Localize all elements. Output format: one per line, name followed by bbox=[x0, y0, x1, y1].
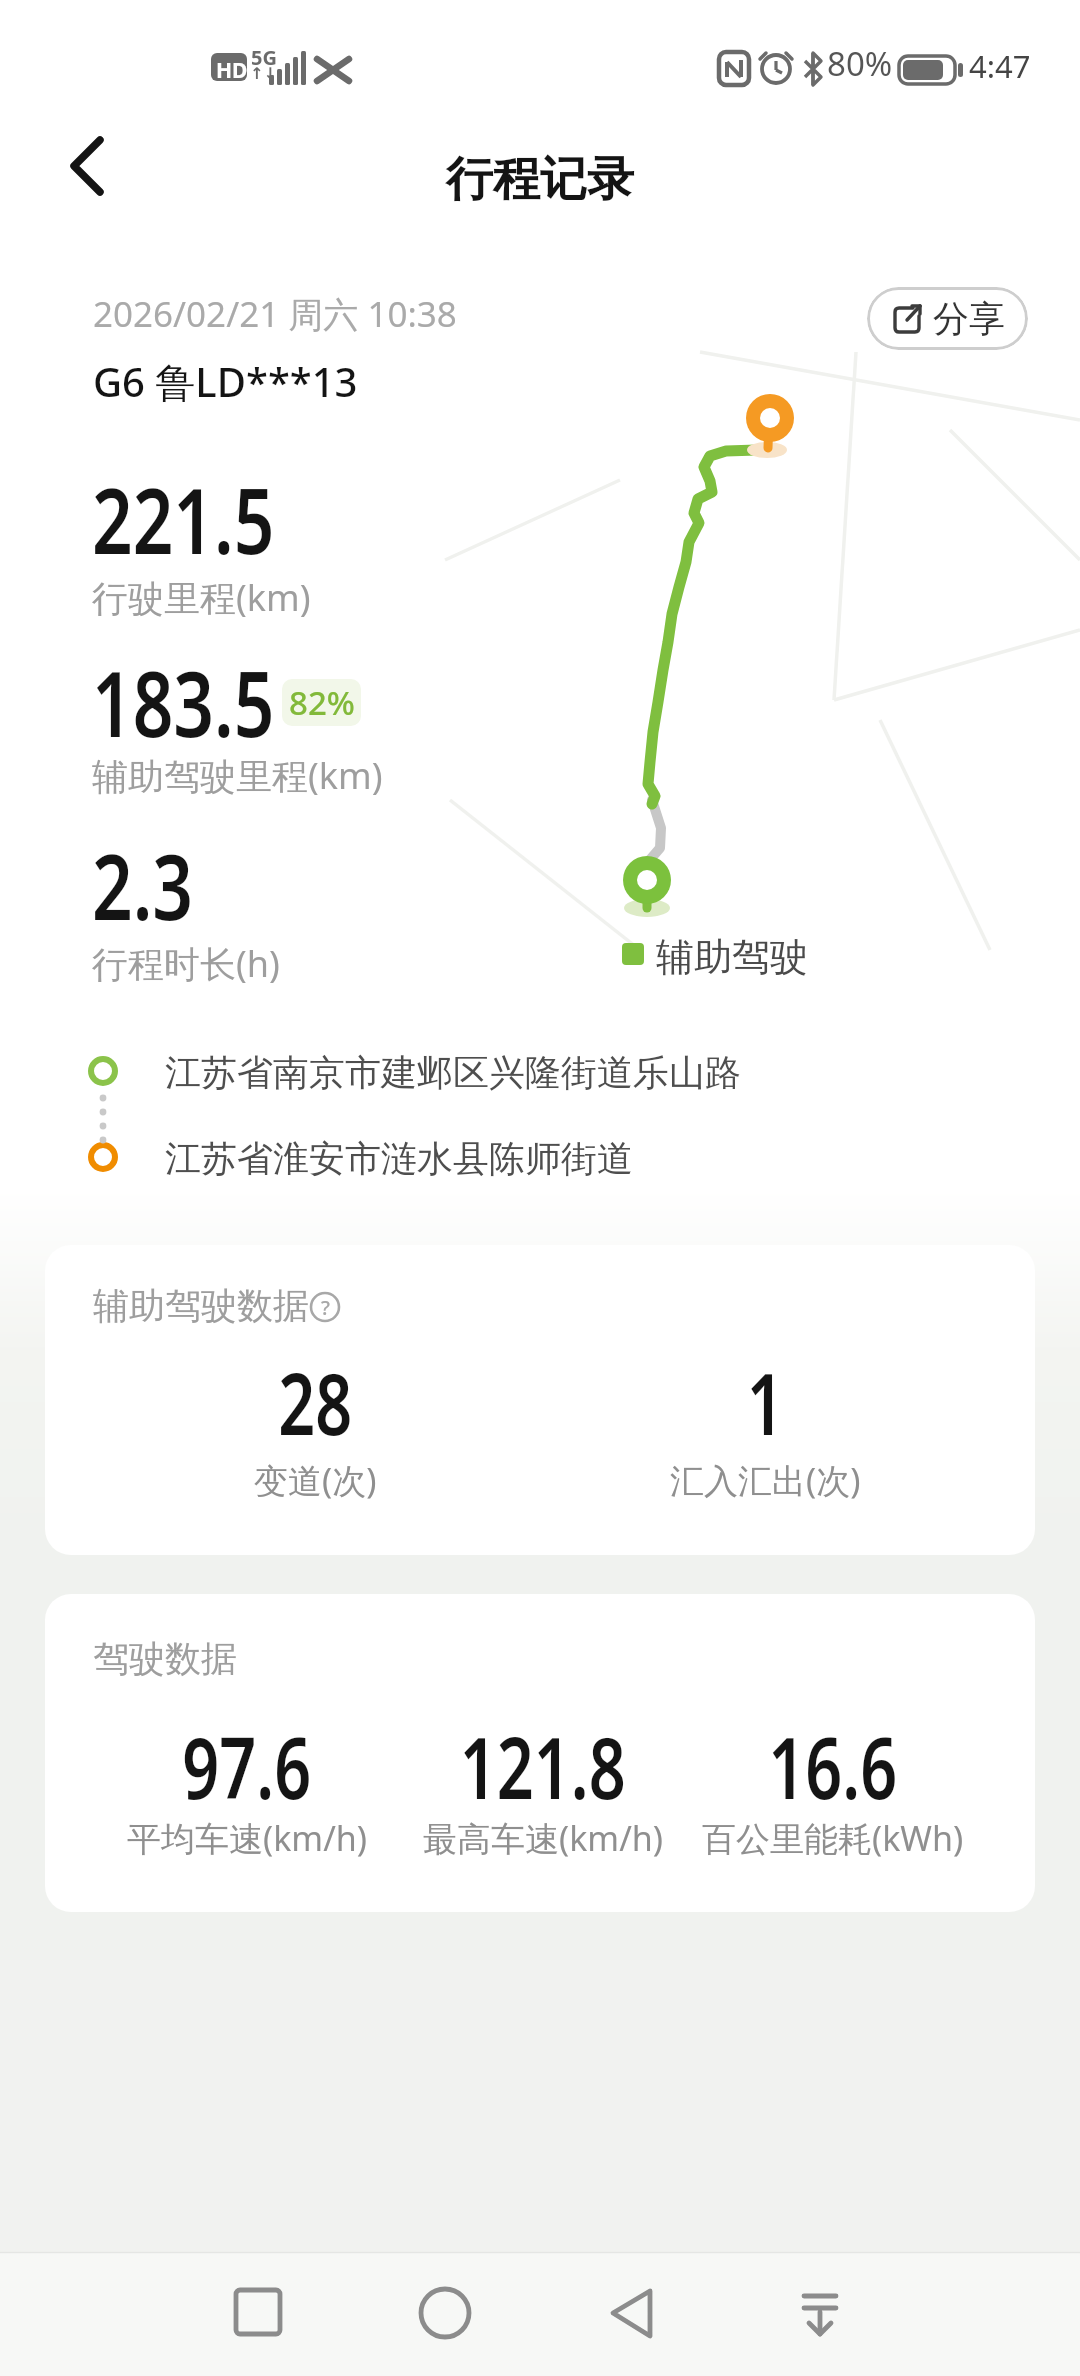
button[interactable]: 辅助驾驶数据 bbox=[45, 1245, 1035, 1555]
staticText: 1 bbox=[747, 1345, 784, 1459]
button[interactable] bbox=[540, 2252, 810, 2376]
button[interactable] bbox=[810, 2252, 1080, 2376]
staticText: ? bbox=[321, 1294, 330, 1321]
staticText: 汇入汇出(次) bbox=[670, 1457, 861, 1503]
button[interactable]: 分享 bbox=[867, 287, 1028, 350]
staticText: 97.6 bbox=[182, 1709, 312, 1823]
button[interactable] bbox=[40, 120, 130, 210]
staticText: 行程记录 bbox=[0, 150, 1080, 209]
staticText: 辅助驾驶数据 bbox=[93, 1283, 309, 1328]
button[interactable] bbox=[0, 2252, 270, 2376]
staticText: 行程时长(h) bbox=[92, 939, 280, 988]
staticText: 183.5 bbox=[92, 641, 274, 764]
staticText: 辅助驾驶 bbox=[656, 933, 808, 981]
staticText: 82% bbox=[289, 680, 355, 725]
button[interactable] bbox=[270, 2252, 540, 2376]
staticText: 江苏省淮安市涟水县陈师街道 bbox=[165, 1136, 633, 1181]
staticText: ↑↓ bbox=[250, 64, 277, 83]
staticText: 5G bbox=[251, 44, 277, 71]
button[interactable]: 驾驶数据 bbox=[45, 1594, 1035, 1912]
staticText: 4:47 bbox=[969, 45, 1031, 87]
staticText: 百公里能耗(kWh) bbox=[702, 1815, 964, 1861]
staticText: HD bbox=[216, 56, 248, 85]
staticText: 221.5 bbox=[92, 458, 274, 581]
staticText: 121.8 bbox=[460, 1709, 626, 1823]
staticText: 2026/02/21 周六 10:38 bbox=[93, 290, 457, 338]
staticText: 驾驶数据 bbox=[93, 1636, 237, 1681]
staticText: 变道(次) bbox=[254, 1457, 377, 1503]
staticText: 江苏省南京市建邺区兴隆街道乐山路 bbox=[165, 1050, 741, 1095]
staticText: 分享 bbox=[933, 296, 1005, 341]
staticText: 28 bbox=[278, 1345, 353, 1459]
staticText: 辅助驾驶里程(km) bbox=[92, 751, 383, 800]
staticText: 80% bbox=[827, 41, 893, 86]
staticText: 平均车速(km/h) bbox=[127, 1815, 368, 1861]
staticText: 行驶里程(km) bbox=[92, 573, 311, 622]
staticText: 16.6 bbox=[768, 1709, 898, 1823]
staticText: 最高车速(km/h) bbox=[423, 1815, 664, 1861]
staticText: G6 鲁LD***13 bbox=[93, 354, 358, 409]
staticText: 2.3 bbox=[92, 824, 193, 947]
